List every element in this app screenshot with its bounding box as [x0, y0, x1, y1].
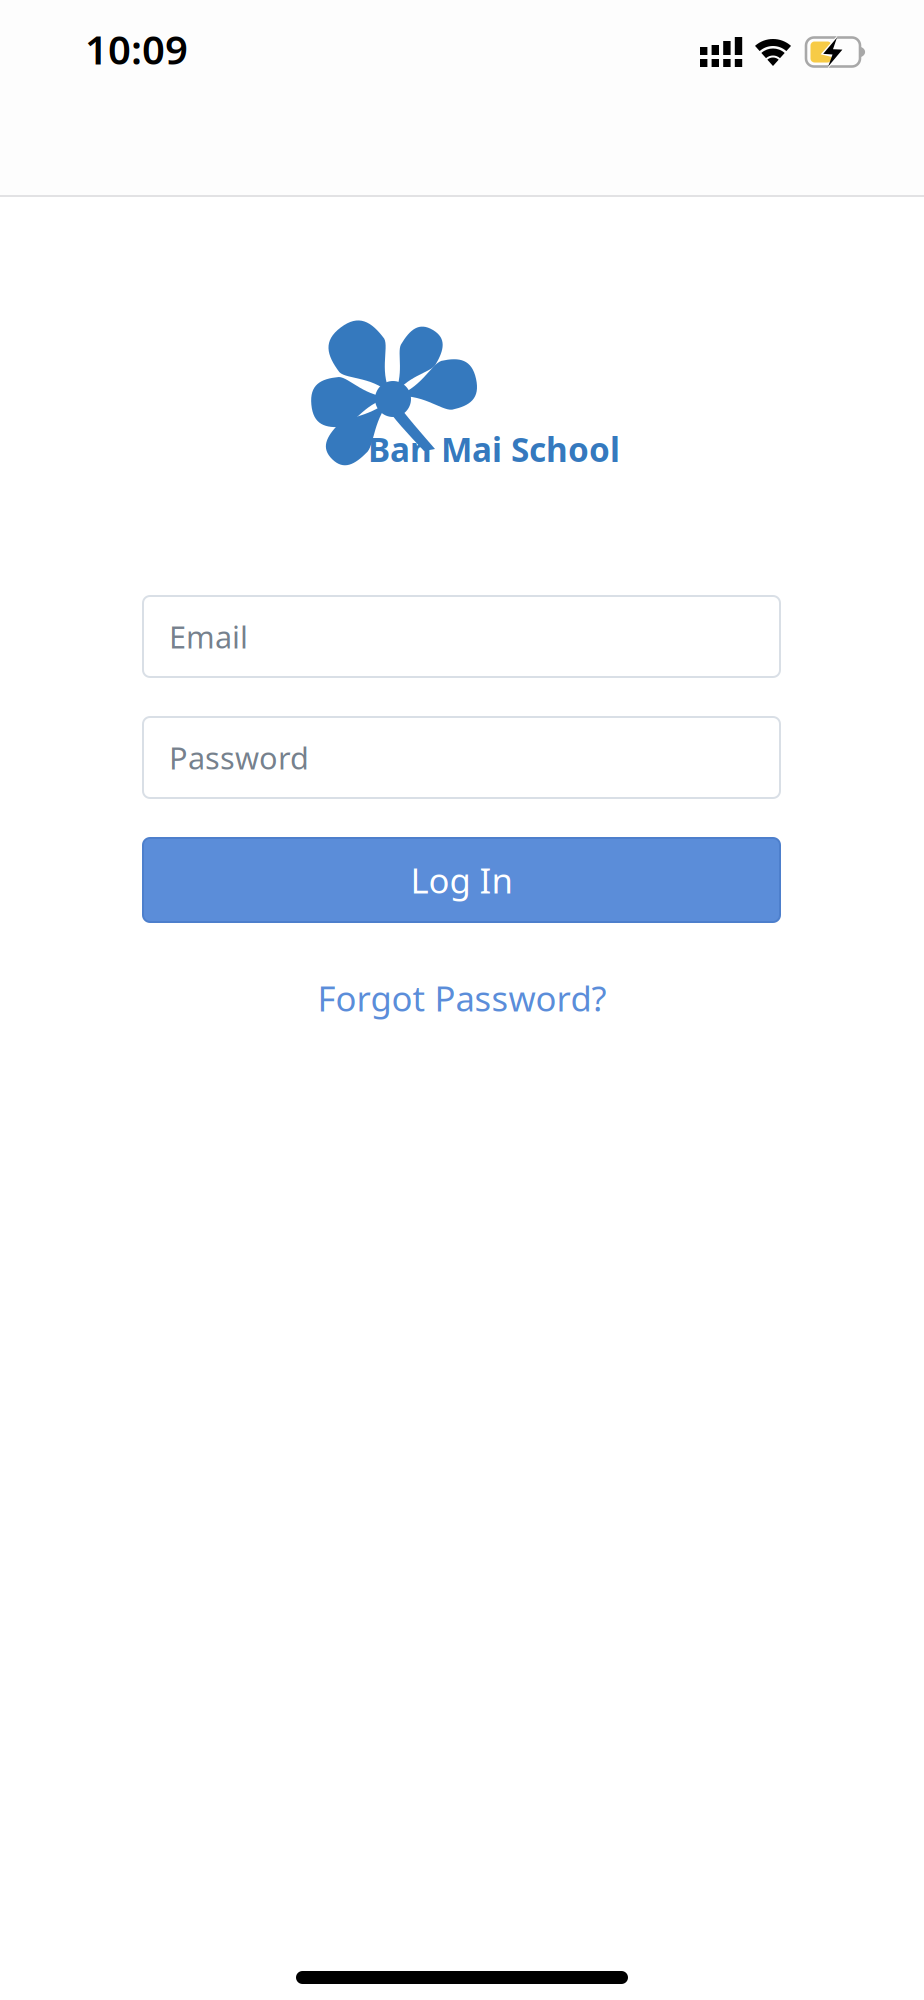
staticText: Ban Mai School [368, 427, 620, 471]
button[interactable]: Log In [143, 838, 780, 922]
staticText: Log In [410, 857, 512, 903]
staticText: Forgot Password? [317, 975, 606, 1021]
staticText: Password [169, 737, 309, 778]
staticText: 10:09 [85, 22, 188, 75]
button[interactable]: Forgot Password? [252, 967, 672, 1029]
button[interactable]: Password [143, 717, 780, 798]
staticText: Email [169, 616, 248, 657]
button[interactable]: Email [143, 596, 780, 677]
